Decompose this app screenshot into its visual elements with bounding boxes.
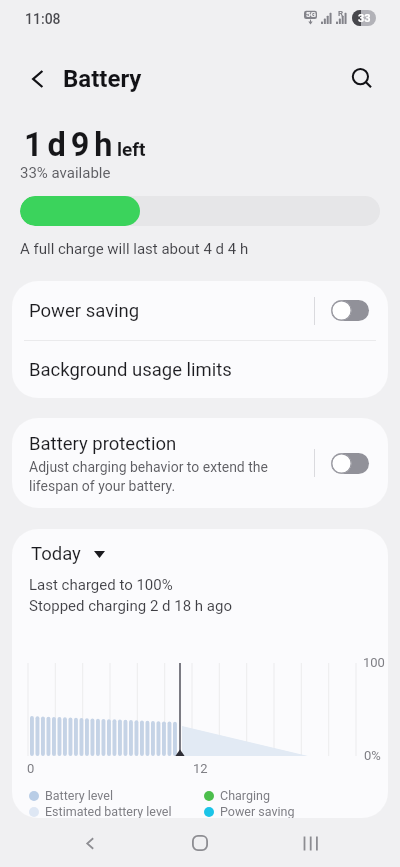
button[interactable]: Back	[72, 825, 108, 861]
button[interactable]: Toggle	[331, 453, 369, 474]
staticText: Estimated battery level	[45, 804, 172, 818]
staticText: Today	[31, 543, 81, 565]
staticText: Battery	[63, 65, 142, 93]
staticText: 100	[363, 655, 385, 670]
staticText: Charging	[220, 788, 270, 803]
button[interactable]: Recents	[292, 825, 328, 861]
staticText: R	[338, 9, 344, 18]
staticText: Last charged to 100% Stopped charging 2 …	[29, 576, 232, 614]
staticText: 12	[193, 761, 208, 776]
staticText: Power saving	[29, 300, 314, 322]
staticText: A full charge will last about 4 d 4 h	[20, 240, 249, 258]
staticText: Background usage limits	[29, 359, 232, 381]
button[interactable]: Toggle	[331, 300, 369, 321]
button[interactable]: Back	[17, 58, 59, 100]
staticText: 33	[358, 12, 371, 25]
staticText: 11:08	[25, 11, 61, 27]
staticText: Power saving	[220, 804, 295, 818]
button[interactable]: Search	[341, 58, 383, 100]
staticText: left	[117, 138, 146, 160]
staticText: Adjust charging behavior to extend the l…	[29, 459, 268, 494]
button[interactable]: Power saving	[12, 281, 388, 340]
staticText: 5G	[306, 10, 317, 19]
staticText: 0	[27, 761, 35, 776]
staticText: Battery level	[45, 788, 113, 803]
button[interactable]: Background usage limits	[12, 341, 388, 398]
staticText: 0%	[364, 748, 381, 763]
button[interactable]: Home	[182, 825, 218, 861]
button[interactable]: Today	[31, 543, 105, 565]
staticText: Battery protection	[29, 433, 177, 455]
staticText: 1 d 9 h	[24, 126, 111, 164]
button[interactable]: Battery protection	[12, 418, 388, 508]
staticText: 33% available	[20, 164, 111, 182]
